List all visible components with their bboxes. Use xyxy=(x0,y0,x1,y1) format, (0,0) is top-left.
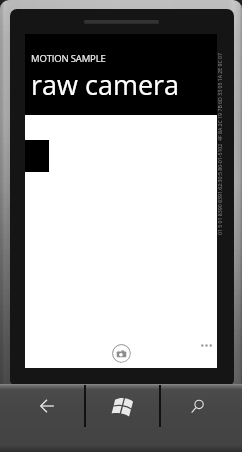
staticText: 01 5 01 8390 8391.62:30:5 80-01-5102 4F … xyxy=(216,52,223,235)
staticText: MOTION SAMPLE xyxy=(31,52,106,65)
button[interactable]: Start xyxy=(86,385,159,427)
button[interactable]: Back xyxy=(10,385,84,427)
button[interactable]: Search xyxy=(161,385,234,427)
button[interactable]: Camera xyxy=(111,343,131,363)
staticText: raw camera xyxy=(31,66,180,103)
button[interactable]: More options xyxy=(198,339,214,351)
